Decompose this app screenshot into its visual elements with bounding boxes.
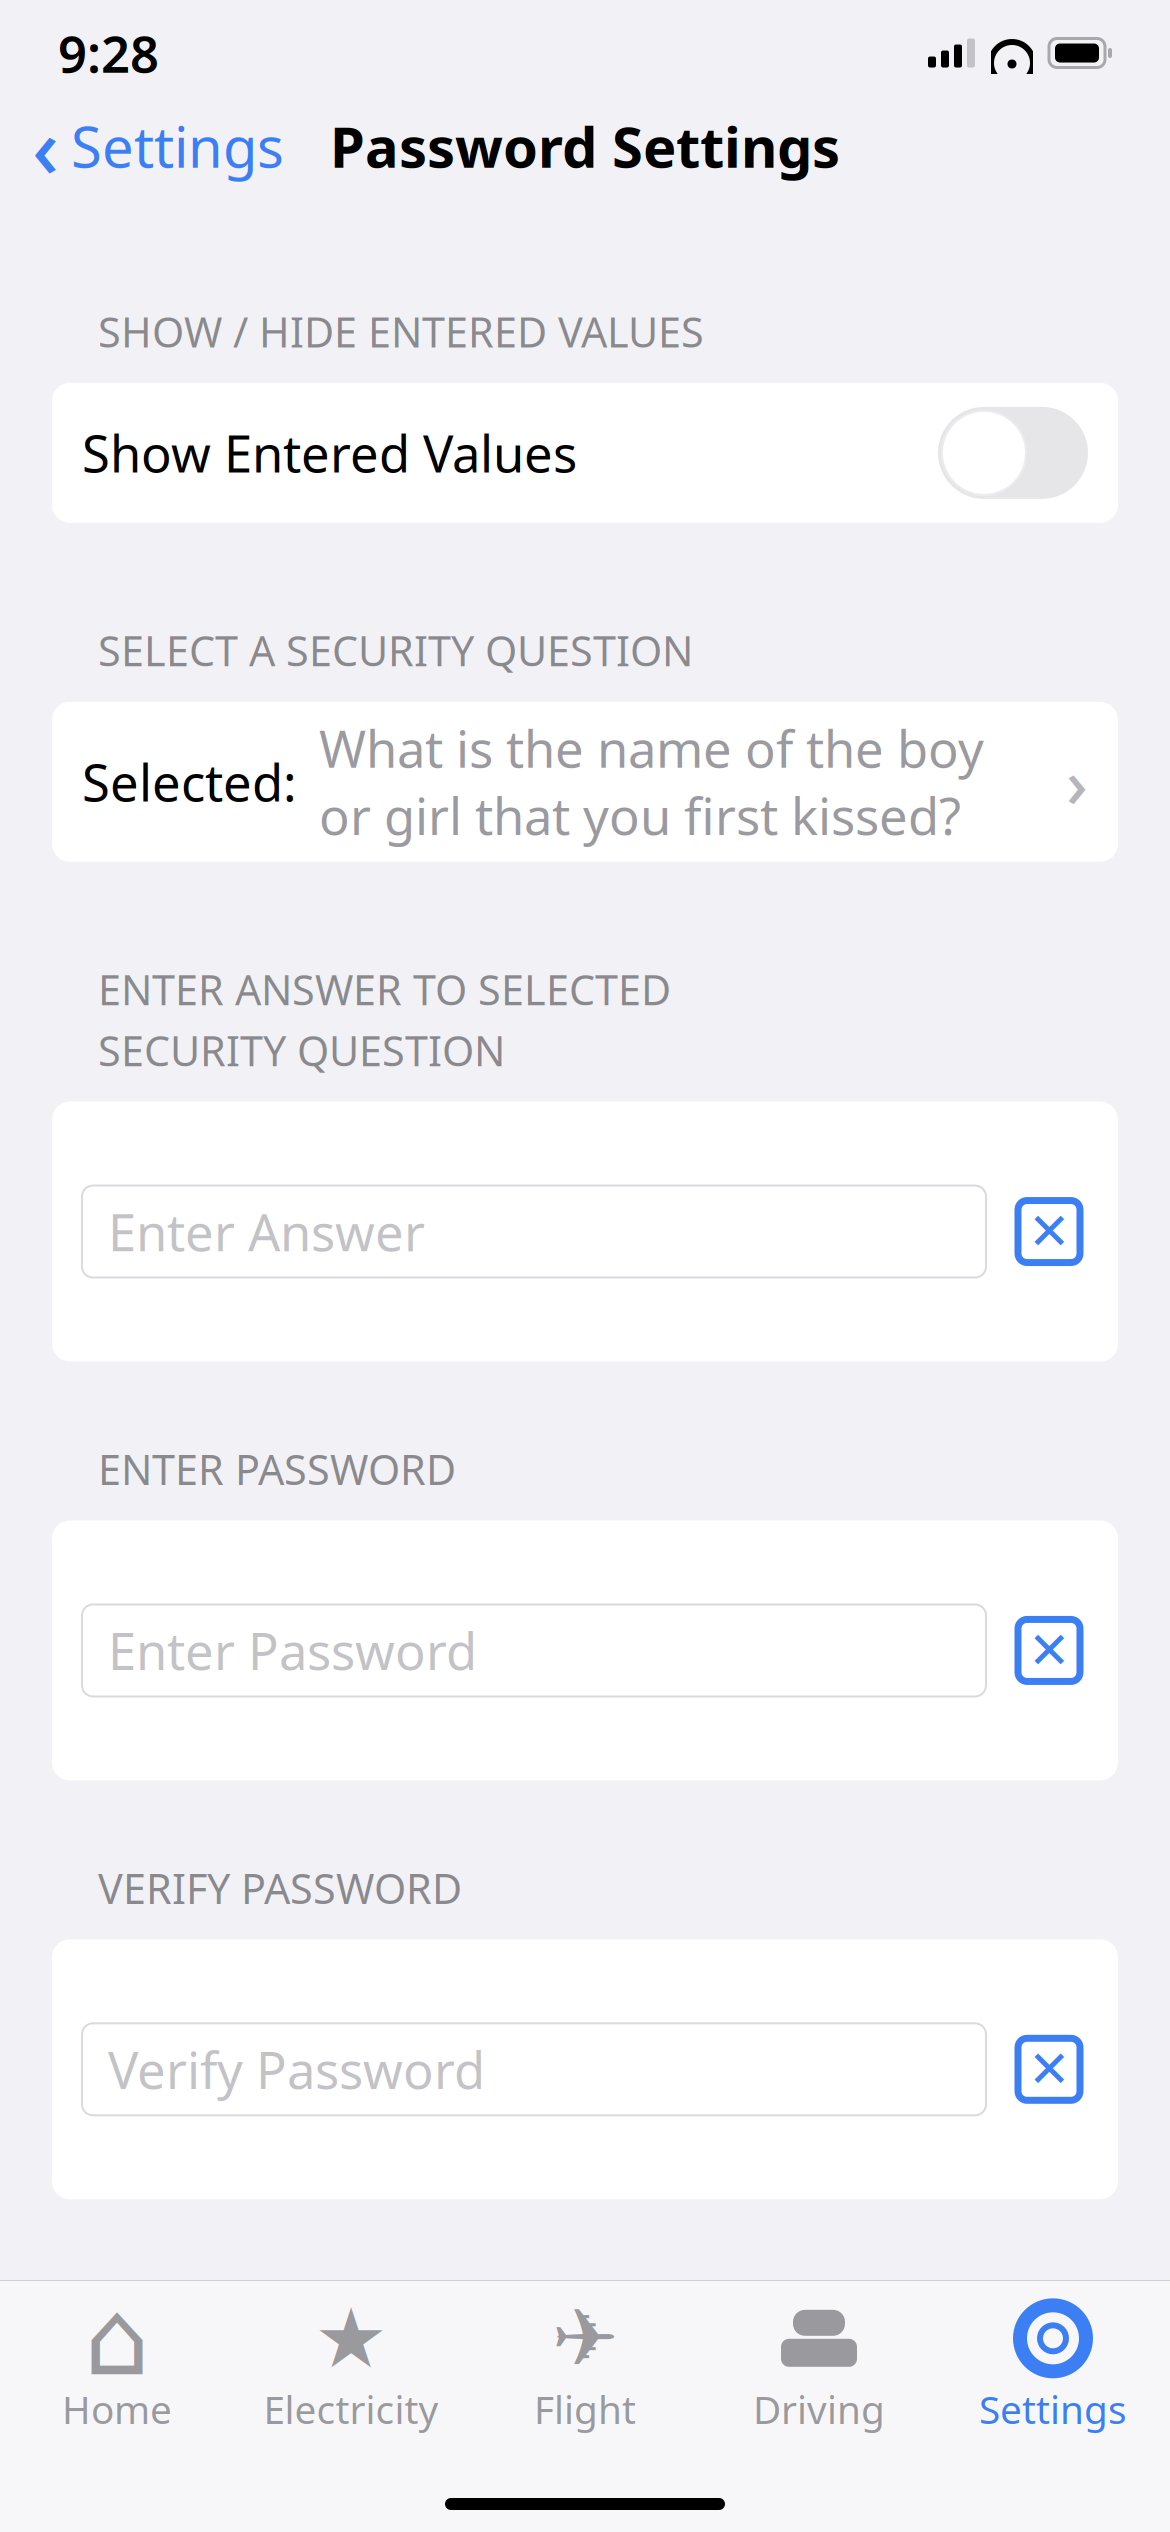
button[interactable]: Clear	[1010, 1611, 1088, 1689]
staticText: VERIFY PASSWORD	[98, 1860, 462, 1915]
staticText: Selected:	[82, 748, 297, 815]
button[interactable]: Selected:	[52, 702, 1118, 862]
staticText: Enter Password	[108, 1617, 477, 1684]
button[interactable]: Clear	[1010, 1193, 1088, 1271]
staticText: ‹	[32, 91, 59, 201]
button[interactable]: Settings	[936, 2287, 1170, 2435]
button[interactable]: ‹	[22, 85, 294, 207]
staticText: ENTER ANSWER TO SELECTED	[98, 962, 671, 1017]
staticText: Settings	[71, 109, 284, 183]
staticText: Verify Password	[108, 2036, 485, 2103]
staticText: Set Password	[426, 2405, 743, 2472]
button[interactable]: Driving	[702, 2287, 936, 2435]
staticText: Flight	[534, 2383, 636, 2435]
staticText: Show Entered Values	[82, 419, 577, 486]
button[interactable]: ✈	[468, 2287, 702, 2435]
staticText: SECURITY QUESTION	[98, 1023, 505, 1078]
staticText: Electricity	[263, 2383, 438, 2435]
button[interactable]: ★	[234, 2287, 468, 2435]
button[interactable]: Set Password	[52, 2358, 1118, 2518]
staticText: ✕	[1028, 2041, 1070, 2098]
staticText: SHOW / HIDE ENTERED VALUES	[98, 304, 704, 359]
button[interactable]: Clear	[1010, 2030, 1088, 2108]
staticText: Driving	[753, 2383, 885, 2435]
staticText: ENTER PASSWORD	[98, 1442, 456, 1496]
staticText: SELECT A SECURITY QUESTION	[98, 623, 693, 678]
staticText: Home	[62, 2383, 172, 2435]
staticText: ⌂	[84, 2279, 150, 2397]
staticText: Password Settings	[330, 109, 840, 183]
button[interactable]: ⌂	[0, 2287, 234, 2435]
staticText: ›	[1066, 737, 1088, 826]
staticText: What is the name of the boy or girl that…	[319, 714, 984, 849]
button[interactable]: Show Entered Values	[52, 383, 1118, 523]
staticText: ★	[314, 2291, 388, 2385]
staticText: ✕	[1028, 1622, 1070, 1679]
staticText: Enter Answer	[108, 1198, 425, 1265]
staticText: SET PASSWORD	[98, 2279, 399, 2334]
staticText: ✈	[551, 2293, 618, 2384]
staticText: ✕	[1028, 1203, 1070, 1260]
staticText: Settings	[979, 2383, 1127, 2435]
staticText: 9:28	[58, 19, 159, 87]
